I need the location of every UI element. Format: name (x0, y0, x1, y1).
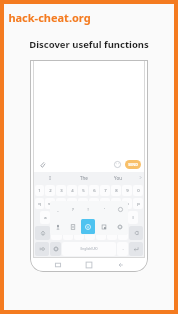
button[interactable]: v (85, 226, 95, 240)
staticText: 8 (115, 188, 118, 194)
button[interactable]: Settings (50, 242, 61, 256)
button[interactable]: o (122, 198, 132, 209)
button[interactable]: q (35, 198, 44, 209)
button[interactable]: SEND (125, 160, 141, 169)
button[interactable]: Voice input (51, 219, 64, 234)
staticText: 9 (126, 188, 129, 194)
button[interactable]: Attach (37, 159, 48, 170)
button[interactable]: g (84, 211, 94, 224)
button[interactable]: 7 (100, 185, 110, 196)
button[interactable]: Enter (129, 242, 143, 256)
button[interactable]: You (101, 172, 135, 183)
staticText: , (57, 207, 59, 213)
button[interactable]: l (128, 211, 138, 224)
button[interactable]: k (117, 211, 127, 224)
button[interactable]: 0 (133, 185, 143, 196)
button[interactable]: 6 (89, 185, 99, 196)
button[interactable]: w (45, 198, 55, 209)
button[interactable]: English(UK) (62, 242, 116, 256)
button[interactable]: p (133, 198, 143, 209)
staticText: I (49, 175, 51, 181)
button[interactable]: ? (65, 201, 80, 218)
button[interactable]: x (63, 226, 73, 240)
staticText: hack-cheat.org (8, 10, 91, 25)
button[interactable]: 5 (78, 185, 88, 196)
staticText: l (132, 215, 134, 221)
button[interactable]: 3 (56, 185, 66, 196)
staticText: The (80, 175, 88, 181)
staticText: SEND (128, 162, 138, 167)
button[interactable]: m (118, 226, 128, 240)
button[interactable]: s (51, 211, 61, 224)
button[interactable]: Emoji (112, 159, 123, 170)
button[interactable]: More suggestions (135, 172, 145, 183)
staticText: You (114, 175, 122, 181)
button[interactable]: 4 (67, 185, 77, 196)
button[interactable]: f (73, 211, 83, 224)
button[interactable]: Recents (51, 258, 65, 272)
staticText: v (89, 230, 92, 236)
staticText: ? (72, 207, 74, 213)
button[interactable]: Symbols (35, 242, 49, 256)
button[interactable]: b (96, 226, 106, 240)
button[interactable]: 9 (122, 185, 132, 196)
button[interactable]: r (67, 198, 77, 209)
button[interactable]: c (74, 226, 84, 240)
button[interactable]: 1 (35, 185, 44, 196)
staticText: w (48, 201, 52, 207)
button[interactable]: u (100, 198, 110, 209)
staticText: ! (87, 207, 89, 213)
button[interactable]: Home (82, 258, 96, 272)
staticText: . (122, 246, 124, 252)
button[interactable]: z (51, 226, 62, 240)
staticText: p (137, 201, 140, 207)
button[interactable]: Emoticon (112, 201, 128, 218)
staticText: 1 (38, 188, 41, 194)
button[interactable]: Stickers (81, 219, 95, 234)
button[interactable]: a (40, 211, 50, 224)
button[interactable]: Keyboard settings (113, 219, 127, 234)
staticText: a (44, 215, 47, 221)
button[interactable]: ! (80, 201, 96, 218)
button[interactable]: i (111, 198, 121, 209)
staticText: 3 (60, 188, 63, 194)
staticText: 5 (82, 188, 85, 194)
button[interactable]: The (67, 172, 101, 183)
staticText: English(UK) (80, 247, 98, 251)
button[interactable]: Shift (35, 226, 50, 240)
staticText: ' (104, 207, 105, 213)
button[interactable]: Notes (97, 219, 111, 234)
button[interactable]: Back (114, 258, 128, 272)
button[interactable]: 2 (45, 185, 55, 196)
button[interactable]: I (33, 172, 67, 183)
button[interactable]: Clipboard (66, 219, 79, 234)
button[interactable]: 8 (111, 185, 121, 196)
button[interactable]: Backspace (129, 226, 143, 240)
staticText: Discover useful functions (29, 38, 149, 51)
